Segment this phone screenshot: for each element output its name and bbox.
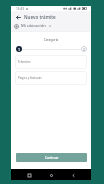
staticText: Trámites — [18, 60, 31, 64]
staticText: 1 — [18, 47, 21, 52]
staticText: 16:43 — [16, 7, 25, 11]
button[interactable]: Recents — [25, 171, 33, 179]
staticText: Continuar — [45, 156, 59, 160]
button[interactable]: Continuar — [16, 153, 87, 162]
button[interactable]: Back — [14, 13, 22, 21]
staticText: 2 — [83, 47, 86, 52]
staticText: Pagos y facturas — [18, 76, 42, 80]
staticText: Mi ubicación — [21, 23, 46, 29]
button[interactable]: Trámites — [15, 55, 87, 69]
button[interactable]: Pagos y facturas — [15, 71, 87, 85]
button[interactable]: Back — [69, 171, 77, 179]
staticText: Nuevo trámite — [24, 14, 56, 20]
staticText: Categoría — [11, 38, 91, 42]
button[interactable]: 1 — [16, 46, 22, 52]
button[interactable]: Home — [47, 171, 55, 179]
button[interactable]: 2 — [81, 46, 87, 52]
button[interactable]: Mi ubicación — [14, 21, 91, 31]
